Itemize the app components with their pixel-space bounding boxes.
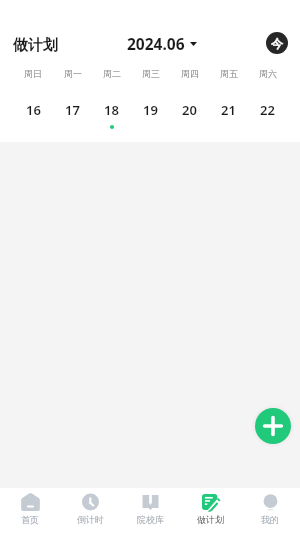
staticText: 周四 [181, 68, 199, 79]
button[interactable]: 做计划 [180, 488, 240, 533]
button[interactable]: 20 [170, 101, 209, 135]
button[interactable]: 17 [53, 101, 92, 135]
button[interactable]: 倒计时 [60, 488, 120, 533]
staticText: 院校库 [137, 514, 164, 525]
staticText: 18 [104, 101, 119, 119]
staticText: 做计划 [197, 514, 224, 525]
button[interactable]: 19 [131, 101, 170, 135]
button[interactable]: 今天 [266, 32, 288, 54]
button[interactable]: 院校库 [120, 488, 180, 533]
staticText: 今 [271, 36, 283, 51]
staticText: 22 [260, 101, 275, 119]
button[interactable]: 18 [92, 101, 131, 135]
staticText: 17 [65, 101, 80, 119]
staticText: 周五 [220, 68, 238, 79]
staticText: 周日 [24, 68, 42, 79]
staticText: 周一 [64, 68, 82, 79]
button[interactable]: 21 [209, 101, 248, 135]
staticText: 倒计时 [77, 514, 104, 525]
button[interactable]: 我的 [240, 488, 300, 533]
staticText: 2024.06 [127, 33, 185, 53]
staticText: 21 [221, 101, 236, 119]
staticText: 做计划 [13, 36, 58, 55]
staticText: 首页 [21, 514, 39, 525]
staticText: 周三 [142, 68, 160, 79]
staticText: 周六 [259, 68, 277, 79]
button[interactable]: 首页 [0, 488, 60, 533]
button[interactable]: 22 [248, 101, 287, 135]
button[interactable]: 做计划 [13, 35, 58, 55]
staticText: 周二 [103, 68, 121, 79]
button[interactable]: 添加计划 [252, 405, 294, 447]
button[interactable]: 2024.06 [125, 33, 198, 53]
button[interactable]: 16 [13, 101, 53, 135]
staticText: 16 [26, 101, 41, 119]
staticText: 19 [143, 101, 158, 119]
staticText: 20 [182, 101, 197, 119]
staticText: 我的 [261, 514, 279, 525]
